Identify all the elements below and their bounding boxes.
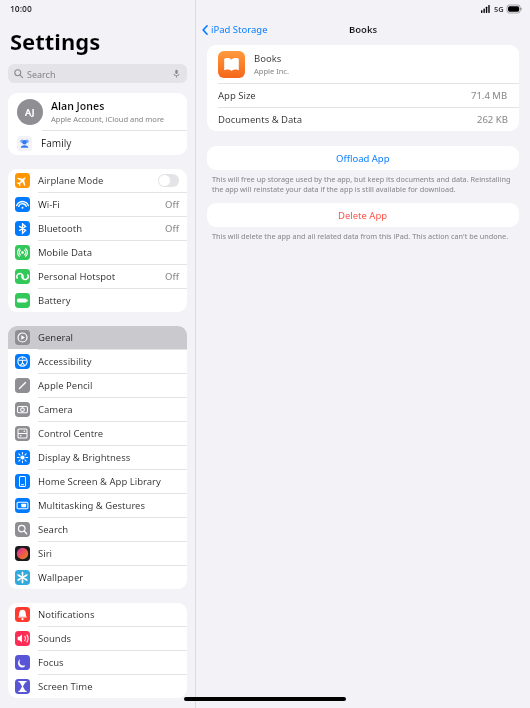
button[interactable]: App Size [207, 84, 519, 107]
staticText: This will free up storage used by the ap… [212, 174, 514, 194]
staticText: Off [165, 198, 179, 211]
staticText: Search [27, 68, 172, 80]
staticText: Apple Account, iCloud and more [51, 114, 165, 124]
button[interactable]: Display & Brightness [8, 446, 187, 469]
staticText: Screen Time [38, 680, 179, 693]
staticText: Books [349, 23, 378, 36]
button[interactable]: Wallpaper [8, 566, 187, 589]
staticText: Offload App [336, 152, 390, 165]
button[interactable]: Personal Hotspot [8, 265, 187, 288]
staticText: AJ [25, 106, 35, 119]
staticText: General [38, 331, 179, 344]
staticText: Accessibility [38, 355, 179, 368]
button[interactable]: Bluetooth [8, 217, 187, 240]
button[interactable]: Wi-Fi [8, 193, 187, 216]
button[interactable]: Control Centre [8, 422, 187, 445]
staticText: Home Screen & App Library [38, 475, 179, 488]
button[interactable]: Documents & Data [207, 108, 519, 131]
button[interactable]: AJ [8, 93, 187, 130]
button[interactable]: Offload App [207, 146, 519, 170]
staticText: Off [165, 222, 179, 235]
button[interactable]: Books [207, 45, 519, 83]
button[interactable]: Notifications [8, 603, 187, 626]
staticText: 71.4 MB [471, 89, 508, 102]
staticText: Wi-Fi [38, 198, 165, 211]
button[interactable]: Multitasking & Gestures [8, 494, 187, 517]
staticText: Bluetooth [38, 222, 165, 235]
button[interactable]: Home Screen & App Library [8, 470, 187, 493]
staticText: Apple Inc. [254, 66, 289, 76]
staticText: Focus [38, 656, 179, 669]
staticText: Camera [38, 403, 179, 416]
button[interactable]: Screen Time [8, 675, 187, 698]
staticText: Airplane Mode [38, 174, 158, 187]
button[interactable]: iPad Storage [202, 23, 268, 36]
staticText: 5G [494, 4, 504, 14]
staticText: Siri [38, 547, 179, 560]
staticText: Family [41, 136, 72, 150]
staticText: 262 KB [477, 113, 508, 126]
button[interactable]: Search [8, 518, 187, 541]
staticText: Wallpaper [38, 571, 179, 584]
staticText: Display & Brightness [38, 451, 179, 464]
staticText: Sounds [38, 632, 179, 645]
button[interactable]: General [8, 326, 187, 349]
staticText: Notifications [38, 608, 179, 621]
button[interactable]: Apple Pencil [8, 374, 187, 397]
staticText: App Size [218, 89, 471, 102]
staticText: 10:00 [10, 3, 32, 15]
button[interactable]: Search [8, 64, 187, 83]
staticText: iPad Storage [211, 23, 268, 36]
other: Airplane Mode toggle [158, 174, 179, 187]
staticText: Delete App [338, 209, 388, 222]
staticText: Search [38, 523, 179, 536]
button[interactable]: Airplane Mode [8, 169, 187, 192]
staticText: Multitasking & Gestures [38, 499, 179, 512]
staticText: Battery [38, 294, 179, 307]
staticText: Personal Hotspot [38, 270, 165, 283]
button[interactable]: Sounds [8, 627, 187, 650]
button[interactable]: Mobile Data [8, 241, 187, 264]
staticText: Alan Jones [51, 99, 105, 113]
staticText: Settings [10, 26, 101, 56]
button[interactable]: Focus [8, 651, 187, 674]
button[interactable]: Camera [8, 398, 187, 421]
staticText: Books [254, 52, 282, 65]
button[interactable]: Siri [8, 542, 187, 565]
staticText: Control Centre [38, 427, 179, 440]
staticText: Mobile Data [38, 246, 179, 259]
staticText: Off [165, 270, 179, 283]
button[interactable]: Accessibility [8, 350, 187, 373]
staticText: This will delete the app and all related… [212, 231, 509, 241]
button[interactable]: Battery [8, 289, 187, 312]
staticText: Documents & Data [218, 113, 477, 126]
staticText: Apple Pencil [38, 379, 179, 392]
button[interactable]: Family [8, 131, 187, 155]
button[interactable]: Delete App [207, 203, 519, 227]
